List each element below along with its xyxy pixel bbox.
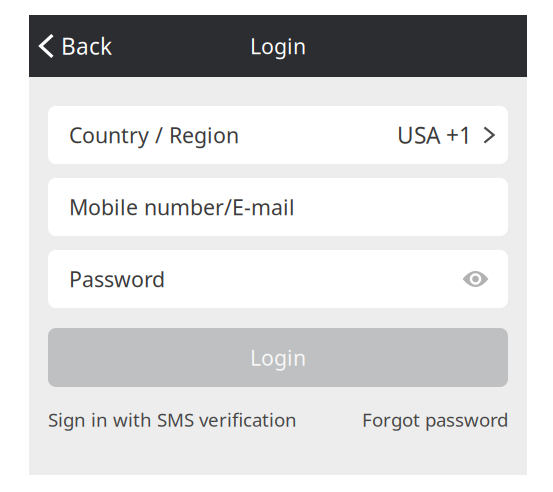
staticText: Mobile number/E-mail: [69, 193, 295, 221]
staticText: Password: [69, 265, 165, 293]
button[interactable]: Login: [48, 328, 508, 387]
button[interactable]: Sign in with SMS verification: [48, 407, 297, 432]
staticText: Back: [61, 31, 112, 61]
staticText: Forgot password: [362, 407, 508, 432]
staticText: USA +1: [397, 120, 472, 150]
staticText: Login: [250, 343, 306, 372]
button[interactable]: Back: [29, 15, 127, 77]
button[interactable]: Forgot password: [362, 407, 508, 432]
staticText: Login: [250, 32, 306, 60]
button[interactable]: Country / Region: [48, 106, 508, 164]
button[interactable]: Show password: [457, 264, 495, 293]
staticText: Country / Region: [69, 121, 239, 149]
staticText: Sign in with SMS verification: [48, 407, 297, 432]
